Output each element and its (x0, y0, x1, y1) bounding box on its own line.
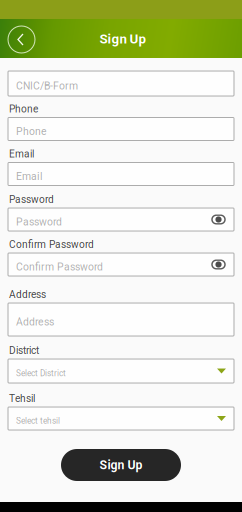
staticText: Address (16, 316, 54, 328)
staticText: CNIC/B-Form (16, 80, 78, 92)
button[interactable]: Password (8, 208, 234, 231)
staticText: Email (9, 148, 34, 160)
staticText: Sign Up (99, 458, 142, 472)
staticText: Select tehsil (16, 416, 60, 426)
staticText: Password (16, 216, 62, 228)
button[interactable]: CNIC/B-Form (8, 71, 234, 96)
staticText: Tehsil (9, 393, 35, 404)
staticText: Email (16, 170, 43, 183)
staticText: District (9, 345, 39, 356)
button[interactable]: Email (8, 162, 234, 185)
staticText: Address (9, 289, 46, 300)
staticText: Password (9, 194, 54, 205)
button[interactable]: Select tehsil (8, 407, 234, 430)
staticText: Confirm Password (9, 239, 94, 250)
staticText: Select District (16, 369, 66, 378)
staticText: Sign Up (99, 31, 146, 47)
button[interactable]: Sign Up (61, 449, 181, 481)
staticText: Confirm Password (16, 261, 103, 273)
button[interactable]: Address (8, 303, 234, 336)
staticText: Phone (9, 103, 38, 115)
button[interactable]: Phone (8, 117, 234, 140)
button[interactable]: Confirm Password (8, 253, 234, 276)
staticText: Phone (16, 125, 47, 138)
button[interactable]: Back (2, 19, 41, 58)
button[interactable]: Select District (8, 359, 234, 383)
